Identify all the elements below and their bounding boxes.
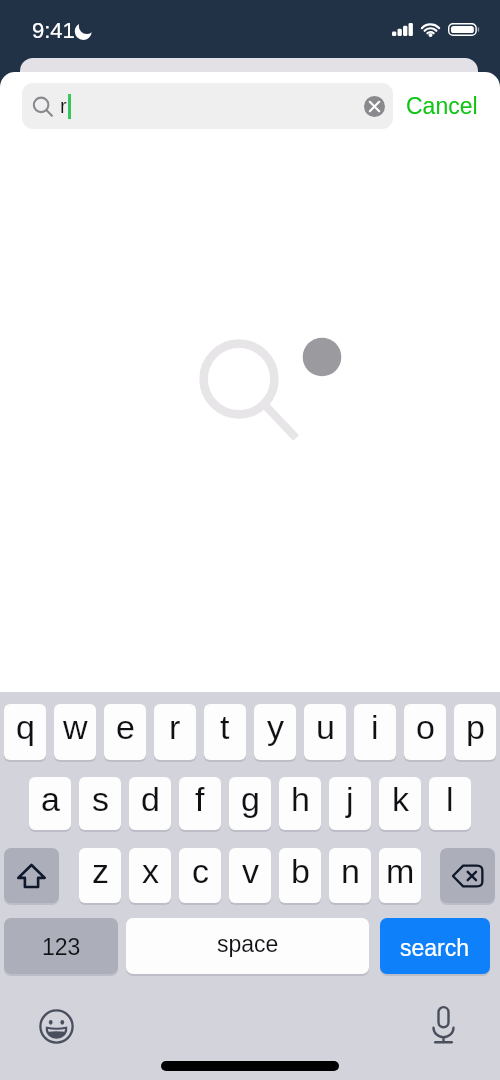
staticText: i [371, 708, 379, 746]
button[interactable]: r [22, 83, 393, 129]
button[interactable]: Backspace [440, 848, 495, 903]
staticText: u [316, 708, 335, 746]
button[interactable]: j [329, 777, 371, 830]
staticText: b [291, 852, 310, 890]
button[interactable]: r [154, 704, 196, 760]
staticText: space [217, 931, 279, 957]
staticText: o [416, 708, 435, 746]
button[interactable]: Clear text [357, 89, 391, 123]
button[interactable]: h [279, 777, 321, 830]
staticText: f [195, 780, 205, 818]
button[interactable]: k [379, 777, 421, 830]
button[interactable]: search [380, 918, 490, 974]
button[interactable]: p [454, 704, 496, 760]
staticText: w [63, 708, 88, 746]
staticText: a [41, 780, 60, 818]
button[interactable]: l [429, 777, 471, 830]
staticText: g [241, 780, 260, 818]
staticText: z [92, 852, 109, 890]
button[interactable]: n [329, 848, 371, 903]
staticText: r [169, 708, 181, 746]
button[interactable]: i [354, 704, 396, 760]
button[interactable]: u [304, 704, 346, 760]
staticText: d [141, 780, 160, 818]
staticText: 9:41 [32, 18, 75, 43]
button[interactable]: space [126, 918, 369, 974]
staticText: Cancel [406, 93, 478, 119]
button[interactable]: a [29, 777, 71, 830]
button[interactable]: 123 [4, 918, 118, 974]
button[interactable]: g [229, 777, 271, 830]
staticText: h [291, 780, 310, 818]
button[interactable]: y [254, 704, 296, 760]
button[interactable]: x [129, 848, 171, 903]
button[interactable]: z [79, 848, 121, 903]
staticText: p [466, 708, 485, 746]
button[interactable]: o [404, 704, 446, 760]
button[interactable]: d [129, 777, 171, 830]
button[interactable]: v [229, 848, 271, 903]
button[interactable]: Dictation [421, 1003, 465, 1047]
button[interactable]: c [179, 848, 221, 903]
staticText: m [386, 852, 415, 890]
staticText: e [116, 708, 135, 746]
button[interactable]: q [4, 704, 46, 760]
button[interactable]: Emoji keyboard [34, 1004, 78, 1048]
button[interactable]: Shift [4, 848, 59, 903]
staticText: j [346, 780, 354, 818]
staticText: x [142, 852, 159, 890]
button[interactable]: f [179, 777, 221, 830]
staticText: q [16, 708, 35, 746]
staticText: t [220, 708, 230, 746]
button[interactable]: t [204, 704, 246, 760]
staticText: c [192, 852, 209, 890]
staticText: 123 [42, 934, 81, 960]
staticText: y [267, 708, 284, 746]
staticText: search [400, 935, 470, 961]
button[interactable]: e [104, 704, 146, 760]
staticText: l [446, 780, 454, 818]
staticText: r [60, 95, 67, 117]
staticText: k [392, 780, 409, 818]
button[interactable]: b [279, 848, 321, 903]
button[interactable]: Cancel [393, 83, 478, 129]
staticText: v [242, 852, 259, 890]
button[interactable]: m [379, 848, 421, 903]
button[interactable]: w [54, 704, 96, 760]
staticText: n [341, 852, 360, 890]
button[interactable]: s [79, 777, 121, 830]
staticText: s [92, 780, 109, 818]
